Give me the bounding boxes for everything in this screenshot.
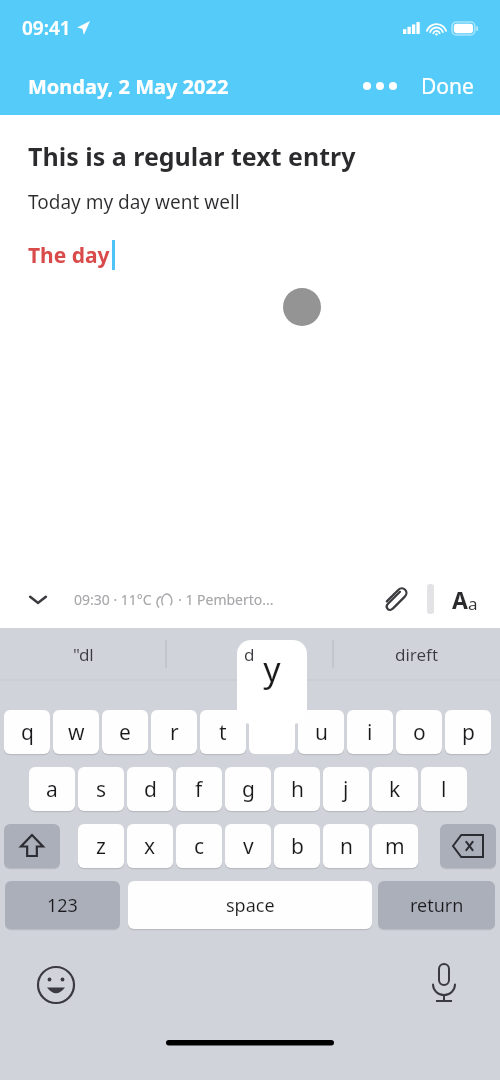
- staticText: s: [96, 775, 107, 804]
- staticText: w: [68, 718, 85, 747]
- staticText: return: [410, 893, 464, 918]
- button[interactable]: space: [128, 881, 372, 929]
- button[interactable]: A: [452, 584, 478, 615]
- button[interactable]: g: [225, 767, 271, 811]
- staticText: a: [468, 592, 478, 615]
- staticText: m: [385, 832, 405, 861]
- staticText: q: [21, 718, 34, 747]
- button[interactable]: c: [176, 824, 222, 868]
- staticText: space: [226, 893, 275, 918]
- staticText: b: [291, 832, 304, 861]
- button[interactable]: a: [29, 767, 75, 811]
- staticText: n: [340, 832, 353, 861]
- button[interactable]: p: [445, 710, 491, 754]
- staticText: · 1 Pemberto...: [178, 590, 274, 609]
- button[interactable]: Emoji: [36, 965, 76, 1005]
- staticText: Done: [421, 72, 474, 101]
- staticText: direft: [395, 643, 439, 666]
- button[interactable]: k: [372, 767, 418, 811]
- staticText: v: [243, 832, 254, 861]
- button[interactable]: Shift: [4, 824, 60, 868]
- staticText: d: [244, 643, 255, 666]
- staticText: t: [219, 718, 227, 747]
- staticText: A: [452, 584, 468, 615]
- button[interactable]: "dl: [0, 628, 166, 680]
- button[interactable]: w: [53, 710, 99, 754]
- staticText: l: [441, 775, 447, 804]
- button[interactable]: h: [274, 767, 320, 811]
- staticText: 09:41: [22, 15, 71, 41]
- staticText: i: [367, 718, 373, 747]
- button[interactable]: u: [298, 710, 344, 754]
- button[interactable]: Dictation: [424, 963, 464, 1003]
- staticText: z: [96, 832, 106, 861]
- staticText: j: [343, 775, 349, 804]
- button[interactable]: y: [237, 640, 307, 724]
- button[interactable]: l: [421, 767, 467, 811]
- button[interactable]: Done: [415, 64, 480, 109]
- button[interactable]: s: [78, 767, 124, 811]
- button[interactable]: b: [274, 824, 320, 868]
- staticText: d: [144, 775, 157, 804]
- button[interactable]: d: [127, 767, 173, 811]
- staticText: 123: [47, 893, 78, 918]
- staticText: x: [144, 832, 156, 861]
- staticText: y: [263, 646, 281, 692]
- button[interactable]: n: [323, 824, 369, 868]
- staticText: g: [242, 775, 255, 804]
- button[interactable]: q: [4, 710, 50, 754]
- staticText: o: [413, 718, 426, 747]
- button[interactable]: e: [102, 710, 148, 754]
- button[interactable]: t: [200, 710, 246, 754]
- staticText: "dl: [73, 643, 94, 666]
- button[interactable]: direft: [333, 628, 500, 680]
- button[interactable]: j: [323, 767, 369, 811]
- staticText: Monday, 2 May 2022: [28, 73, 229, 100]
- staticText: The day: [28, 241, 110, 270]
- button[interactable]: z: [78, 824, 124, 868]
- staticText: This is a regular text entry: [28, 139, 356, 173]
- staticText: f: [195, 775, 203, 804]
- staticText: h: [291, 775, 304, 804]
- button[interactable]: Backspace: [440, 824, 496, 868]
- button[interactable]: d: [166, 628, 333, 680]
- button[interactable]: i: [347, 710, 393, 754]
- staticText: c: [194, 832, 205, 861]
- button[interactable]: 123: [5, 881, 120, 929]
- button[interactable]: f: [176, 767, 222, 811]
- staticText: Today my day went well: [28, 189, 240, 215]
- button[interactable]: r: [151, 710, 197, 754]
- staticText: 09:30 · 11°C: [74, 590, 152, 609]
- button[interactable]: o: [396, 710, 442, 754]
- staticText: r: [170, 718, 179, 747]
- button[interactable]: More options: [353, 72, 407, 100]
- staticText: p: [462, 718, 475, 747]
- button[interactable]: return: [378, 881, 495, 929]
- staticText: e: [119, 718, 131, 747]
- button[interactable]: Attach: [379, 584, 409, 614]
- button[interactable]: x: [127, 824, 173, 868]
- button[interactable]: m: [372, 824, 418, 868]
- staticText: k: [389, 775, 401, 804]
- staticText: a: [46, 775, 58, 804]
- staticText: u: [315, 718, 328, 747]
- button[interactable]: Collapse: [24, 585, 52, 613]
- button[interactable]: v: [225, 824, 271, 868]
